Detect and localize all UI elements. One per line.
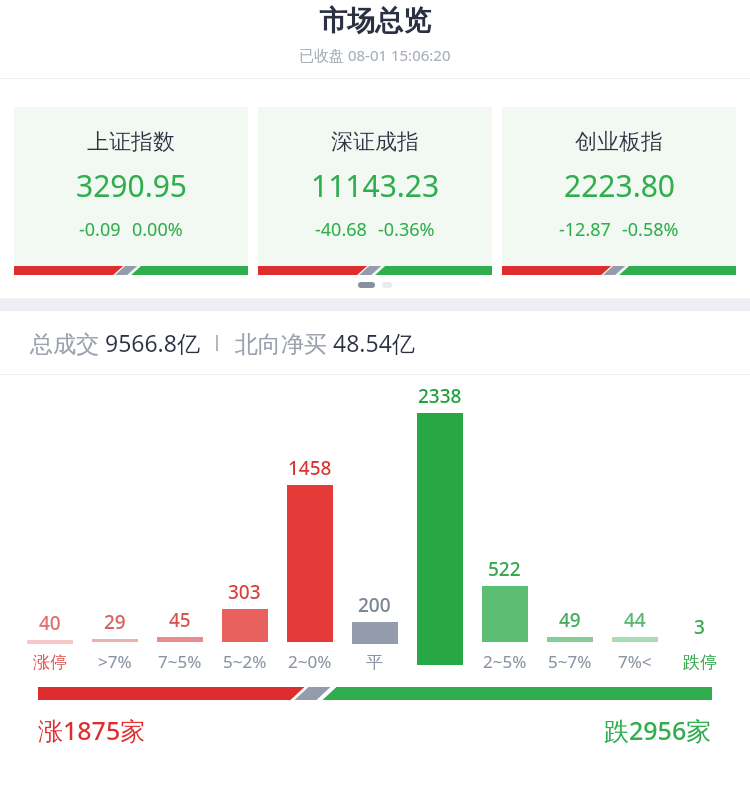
staticText: 北向净买 <box>235 327 333 358</box>
staticText: 涨停 <box>33 652 67 673</box>
staticText: 深证成指 <box>331 128 419 156</box>
staticText: -12.87 <box>559 217 611 242</box>
staticText: 48.54亿 <box>333 327 415 358</box>
staticText: 11143.23 <box>311 165 440 206</box>
staticText: 2338 <box>418 383 462 409</box>
button[interactable]: 40 <box>18 610 82 673</box>
staticText: 3290.95 <box>76 165 187 206</box>
staticText: 44 <box>624 607 646 633</box>
staticText: 丨 <box>200 331 235 354</box>
button[interactable]: 200 <box>342 592 407 673</box>
button[interactable]: 上证指数 <box>14 107 248 275</box>
button[interactable]: 创业板指 <box>502 107 736 275</box>
staticText: >7% <box>98 650 132 673</box>
staticText: 跌停 <box>683 652 717 673</box>
button[interactable]: 1458 <box>277 455 342 673</box>
staticText: 40 <box>39 610 61 636</box>
staticText: 29 <box>104 609 126 635</box>
button[interactable]: 44 <box>602 607 667 673</box>
staticText: 303 <box>228 579 261 605</box>
button[interactable]: 522 <box>472 556 537 673</box>
staticText: -0.09 <box>79 217 121 242</box>
staticText: 上证指数 <box>87 128 175 156</box>
staticText: 9566.8亿 <box>105 327 200 358</box>
staticText: -40.68 <box>315 217 367 242</box>
staticText: 3 <box>694 614 705 640</box>
staticText: 0.00% <box>132 217 183 242</box>
staticText: 已收盘 08-01 15:06:20 <box>299 45 451 65</box>
button[interactable]: Page 1 <box>358 282 375 288</box>
staticText: 49 <box>559 607 581 633</box>
button[interactable]: 总成交 <box>30 311 750 374</box>
staticText: 市场总览 <box>319 3 431 38</box>
staticText: 522 <box>488 556 521 582</box>
staticText: 7~5% <box>158 650 202 673</box>
button[interactable]: Page 2 <box>382 282 392 288</box>
staticText: 跌2956家 <box>604 713 712 747</box>
button[interactable]: 29 <box>82 609 147 673</box>
staticText: 2~5% <box>483 650 527 673</box>
button[interactable]: 303 <box>212 579 277 673</box>
button[interactable]: 3 <box>667 614 732 673</box>
staticText: 创业板指 <box>575 128 663 156</box>
staticText: 5~7% <box>548 650 592 673</box>
staticText: 2~0% <box>288 650 332 673</box>
staticText: 涨1875家 <box>38 713 146 747</box>
staticText: 总成交 <box>30 327 105 358</box>
button[interactable]: 深证成指 <box>258 107 492 275</box>
staticText: -0.36% <box>378 217 435 242</box>
staticText: 5~2% <box>223 650 267 673</box>
button[interactable]: 45 <box>147 607 212 673</box>
staticText: 2223.80 <box>564 165 675 206</box>
staticText: 45 <box>169 607 191 633</box>
staticText: 平 <box>366 652 383 673</box>
button[interactable]: 2338 <box>407 383 472 673</box>
button[interactable]: 49 <box>537 607 602 673</box>
staticText: -0.58% <box>622 217 679 242</box>
staticText: 7%< <box>618 650 652 673</box>
staticText: 200 <box>358 592 391 618</box>
staticText: 1458 <box>288 455 332 481</box>
